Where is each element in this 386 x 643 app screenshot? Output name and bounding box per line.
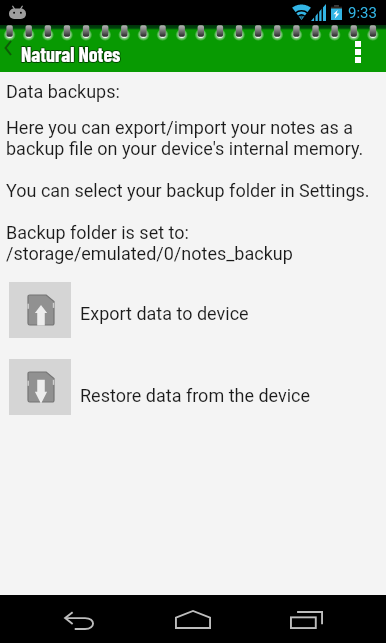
staticText: Natural Notes [22, 42, 122, 66]
button[interactable]: More options [341, 31, 375, 72]
staticText: Natural Notes [20, 42, 120, 66]
button[interactable]: Recents [250, 595, 363, 643]
staticText: Backup folder is set to: /storage/emulat… [6, 222, 293, 264]
staticText: Natural Notes [22, 41, 122, 65]
staticText: Export data to device [80, 303, 249, 324]
button[interactable]: Restore data from the device [0, 359, 386, 416]
staticText: Natural Notes [21, 43, 121, 67]
button[interactable]: Back [0, 36, 18, 62]
button[interactable]: Back [24, 595, 137, 643]
staticText: 9:33 [348, 4, 377, 22]
staticText: Restore data from the device [80, 385, 311, 406]
staticText: Natural Notes [20, 41, 120, 65]
button[interactable]: Home [137, 595, 250, 643]
staticText: Data backups: [6, 81, 120, 102]
staticText: You can select your backup folder in Set… [6, 180, 370, 201]
staticText: Natural Notes [21, 41, 121, 65]
staticText: Natural Notes [22, 43, 122, 67]
staticText: Natural Notes [21, 42, 121, 66]
button[interactable]: Export data to device [0, 282, 386, 339]
staticText: Here you can export/import your notes as… [6, 117, 364, 159]
staticText: Natural Notes [20, 43, 120, 67]
